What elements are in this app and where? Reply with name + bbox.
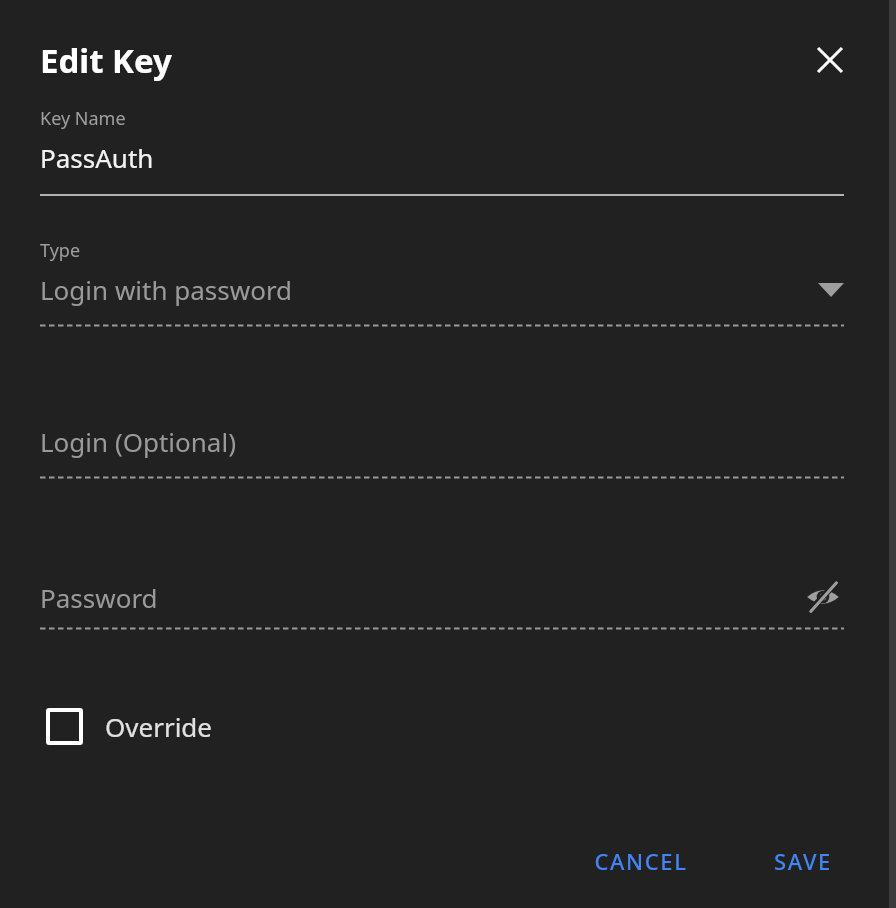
button[interactable]: SAVE	[762, 836, 844, 886]
staticText: Edit Key	[40, 38, 172, 83]
staticText: Login with password	[40, 272, 293, 307]
button[interactable]: Override	[40, 708, 213, 745]
button[interactable]: Show password	[802, 576, 844, 618]
staticText: Password	[40, 580, 158, 615]
staticText: Type	[40, 238, 81, 263]
staticText: Key Name	[40, 106, 126, 131]
staticText: Override	[105, 709, 213, 744]
button[interactable]: Password	[40, 576, 844, 618]
staticText: PassAuth	[40, 140, 154, 175]
staticText: SAVE	[774, 846, 832, 876]
button[interactable]: Login (Optional)	[40, 424, 844, 479]
button[interactable]: Close	[806, 36, 854, 84]
staticText: Login (Optional)	[40, 424, 236, 459]
button[interactable]: Type	[40, 238, 844, 327]
staticText: CANCEL	[594, 846, 688, 876]
button[interactable]: CANCEL	[582, 836, 700, 886]
button[interactable]: Key Name	[40, 106, 844, 196]
